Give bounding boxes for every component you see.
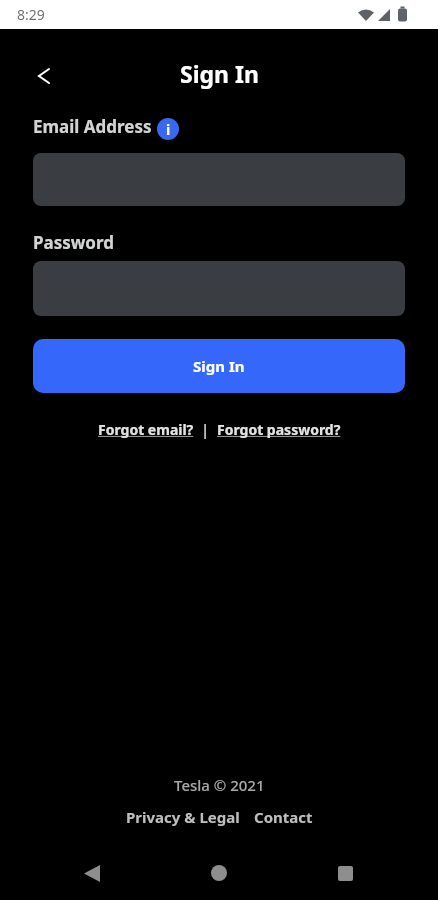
button[interactable]	[199, 853, 239, 893]
button[interactable]	[33, 261, 405, 316]
button[interactable]: Forgot password?	[217, 420, 341, 439]
staticText: Tesla © 2021	[174, 775, 265, 795]
button[interactable]: Sign In	[33, 339, 405, 393]
staticText: |	[194, 420, 217, 439]
staticText: Email Address	[33, 115, 152, 138]
button[interactable]: Forgot email?	[98, 420, 194, 439]
button[interactable]	[72, 853, 112, 893]
button[interactable]: Privacy & Legal	[126, 807, 240, 827]
button[interactable]: i	[157, 118, 179, 140]
button[interactable]: Contact	[254, 807, 313, 827]
button[interactable]	[24, 57, 64, 95]
button[interactable]	[33, 153, 405, 206]
staticText: Password	[33, 231, 114, 254]
staticText: i	[166, 120, 171, 139]
staticText: 8:29	[17, 5, 45, 24]
staticText: Sign In	[180, 58, 259, 89]
button[interactable]	[325, 853, 365, 893]
staticText: Sign In	[193, 356, 245, 376]
